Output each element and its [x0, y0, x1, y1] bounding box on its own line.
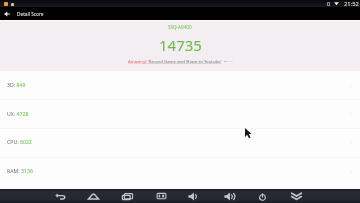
button[interactable]: Screenshot — [153, 189, 169, 203]
staticText: Detail Score — [17, 11, 44, 17]
staticText: UX: 4728 — [7, 110, 29, 117]
staticText: 21:52 — [344, 0, 359, 7]
staticText: ••• — [228, 58, 233, 64]
button[interactable]: Volume down — [185, 189, 201, 203]
staticText: CPU: 6022 — [7, 138, 32, 145]
button[interactable]: Power — [254, 189, 270, 203]
button[interactable]: Amazing! 'Record Game and Share to Youtu… — [128, 58, 233, 64]
button[interactable]: Volume up — [221, 189, 237, 203]
staticText: 0 — [327, 0, 331, 7]
staticText: SSQ-A0400 — [168, 24, 192, 30]
button[interactable]: Back — [52, 189, 68, 203]
staticText: 3D: 849 — [7, 81, 26, 88]
staticText: •• — [224, 58, 228, 64]
button[interactable]: Recent apps — [119, 189, 135, 203]
staticText: 14735 — [159, 35, 202, 55]
button[interactable]: UX: 4728 — [0, 100, 360, 129]
staticText: RAM: 3136 — [7, 167, 33, 174]
button[interactable]: Home — [85, 189, 101, 203]
button[interactable]: CPU: 6022 — [0, 128, 360, 157]
button[interactable]: Back — [0, 7, 14, 20]
button[interactable]: Hide navigation bar — [288, 189, 304, 203]
staticText: Amazing! 'Record Game and Share to Youtu… — [128, 58, 222, 64]
button[interactable]: 3D: 849 — [0, 71, 360, 100]
button[interactable]: RAM: 3136 — [0, 157, 360, 186]
